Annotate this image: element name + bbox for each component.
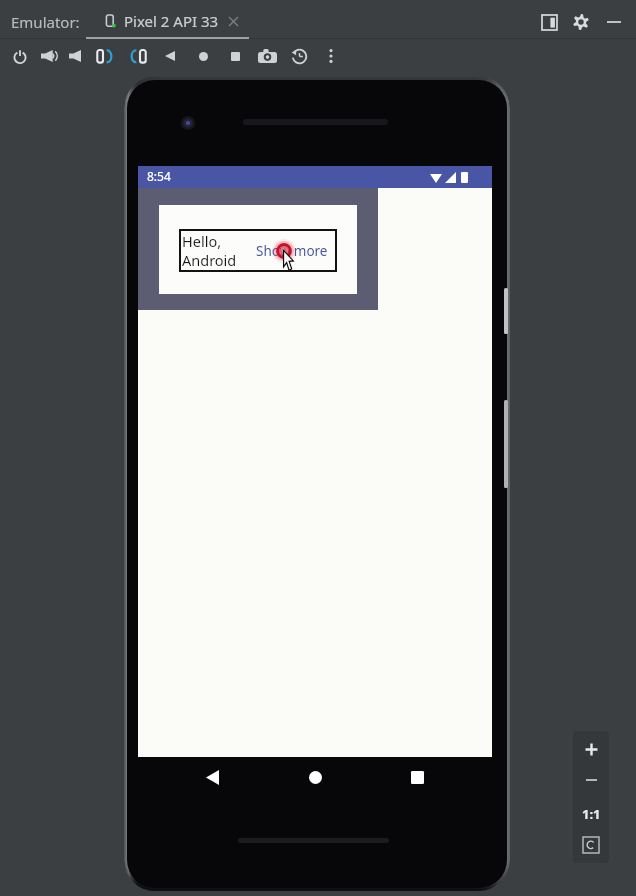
button[interactable]: Zoom to fit [573,829,609,861]
button[interactable]: Actual size [573,798,609,830]
staticText: Emulator: [11,12,80,32]
button[interactable]: Volume down [62,43,88,69]
staticText: Show more [256,242,328,260]
button[interactable]: Pixel 2 API 33 [102,9,240,33]
button[interactable]: Power [7,43,33,69]
button[interactable]: Volume up [35,43,61,69]
button[interactable]: Recent apps [391,757,443,797]
staticText: 8:54 [147,168,171,184]
staticText: Pixel 2 API 33 [124,11,219,31]
button[interactable]: Show more [256,242,328,260]
button[interactable]: Back [186,757,238,797]
button[interactable]: Rotate left [91,43,117,69]
button[interactable]: Home [190,43,216,69]
button[interactable]: Overview [222,43,248,69]
button[interactable]: Rotate [286,43,312,69]
button[interactable]: Screenshot [254,43,280,69]
button[interactable]: More [318,43,344,69]
staticText: Hello, Android [182,231,237,270]
button[interactable]: Rotate right [125,43,151,69]
button[interactable]: Settings [569,10,593,34]
button[interactable]: Back [157,43,183,69]
button[interactable]: Zoom out [573,764,609,796]
button[interactable]: Zoom in [573,733,609,765]
button[interactable]: Home [289,757,341,797]
button[interactable]: Minimize [602,10,626,34]
button[interactable]: Split window [537,10,561,34]
staticText: 1:1 [582,805,601,823]
